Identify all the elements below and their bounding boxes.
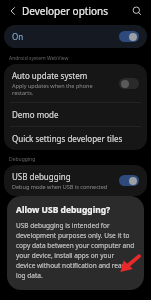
staticText: Quick settings developer tiles <box>12 133 123 144</box>
staticText: Developer options <box>22 4 109 18</box>
staticText: Android system WebView <box>9 55 69 62</box>
staticText: USB debugging is intended for developmen… <box>16 221 135 280</box>
button[interactable]: Demo mode <box>4 103 147 126</box>
button[interactable]: Search <box>128 2 146 20</box>
button[interactable]: Toggle on <box>119 31 139 42</box>
staticText: Debugging <box>9 156 36 163</box>
staticText: authorizations for systems that haven't <box>9 204 101 211</box>
staticText: On <box>12 31 24 42</box>
staticText: USB debugging <box>12 171 71 182</box>
staticText: Debug mode when USB is connected <box>12 183 108 190</box>
button[interactable]: USB debugging <box>4 165 147 196</box>
button[interactable]: On <box>4 25 147 48</box>
staticText: Auto update system <box>12 70 88 81</box>
staticText: Demo mode <box>12 109 59 120</box>
button[interactable]: Toggle on <box>119 175 139 186</box>
button[interactable]: Toggle off <box>119 78 139 89</box>
staticText: Apply updates when the phone restarts. <box>12 82 115 96</box>
button[interactable]: Quick settings developer tiles <box>4 127 147 150</box>
button[interactable]: Back <box>4 2 22 20</box>
button[interactable]: Auto update system <box>4 64 147 102</box>
staticText: Allow USB debugging? <box>16 204 111 216</box>
